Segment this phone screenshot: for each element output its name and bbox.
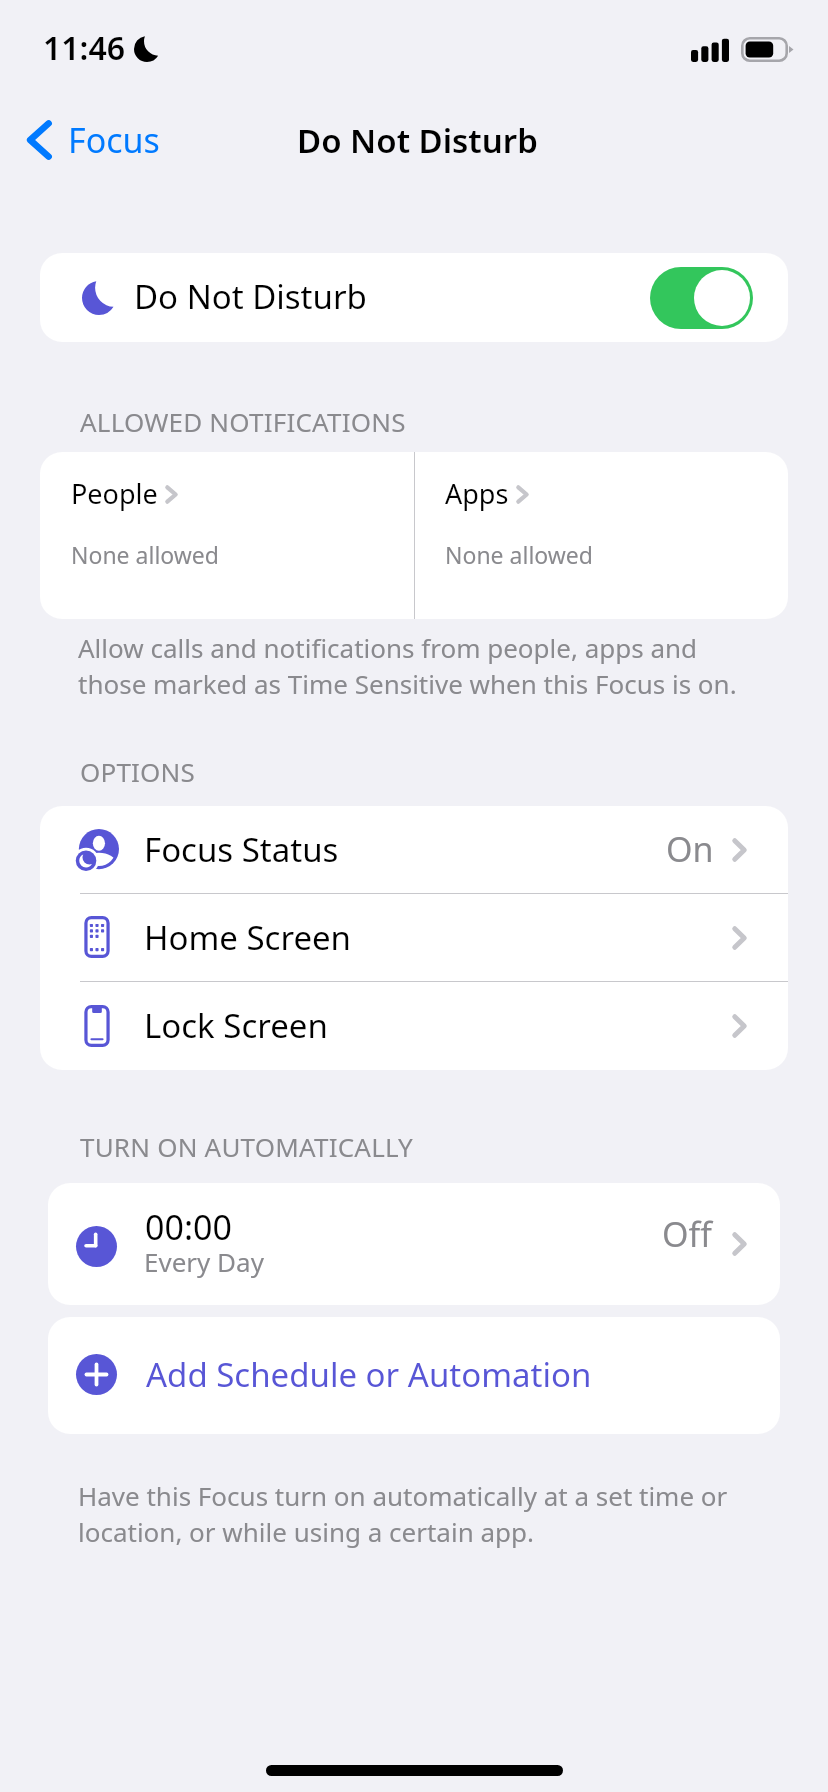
staticText: Lock Screen xyxy=(144,1003,328,1048)
staticText: 00:00 xyxy=(145,1204,232,1250)
staticText: None allowed xyxy=(71,539,219,570)
staticText: Add Schedule or Automation xyxy=(146,1352,592,1397)
staticText: Off xyxy=(662,1211,712,1257)
button[interactable]: Focus Status xyxy=(40,806,788,894)
staticText: ALLOWED NOTIFICATIONS xyxy=(80,404,406,439)
staticText: On xyxy=(666,826,714,872)
staticText: Do Not Disturb xyxy=(134,274,367,319)
button[interactable]: Add Schedule or Automation xyxy=(48,1317,780,1434)
button[interactable]: Apps xyxy=(414,452,788,619)
staticText: Home Screen xyxy=(144,915,352,960)
staticText: None allowed xyxy=(445,539,593,570)
button[interactable]: People xyxy=(40,452,414,619)
staticText: OPTIONS xyxy=(80,754,196,789)
staticText: 11:46 xyxy=(43,26,126,70)
staticText: Have this Focus turn on automatically at… xyxy=(78,1478,728,1550)
staticText: Focus Status xyxy=(144,827,339,872)
button[interactable]: Lock Screen xyxy=(40,982,788,1070)
staticText: Allow calls and notifications from peopl… xyxy=(78,630,737,702)
button[interactable]: Do Not Disturb xyxy=(40,253,788,342)
button[interactable]: Do Not Disturb toggle xyxy=(650,267,753,329)
staticText: Focus xyxy=(68,117,160,163)
button[interactable]: Back to Focus xyxy=(18,112,168,168)
staticText: Every Day xyxy=(144,1244,264,1279)
staticText: TURN ON AUTOMATICALLY xyxy=(80,1129,413,1164)
button[interactable]: Home Screen xyxy=(40,894,788,982)
button[interactable]: 00:00 xyxy=(48,1183,780,1305)
staticText: Do Not Disturb xyxy=(297,118,538,163)
staticText: Apps xyxy=(445,475,509,512)
staticText: People xyxy=(71,475,158,512)
